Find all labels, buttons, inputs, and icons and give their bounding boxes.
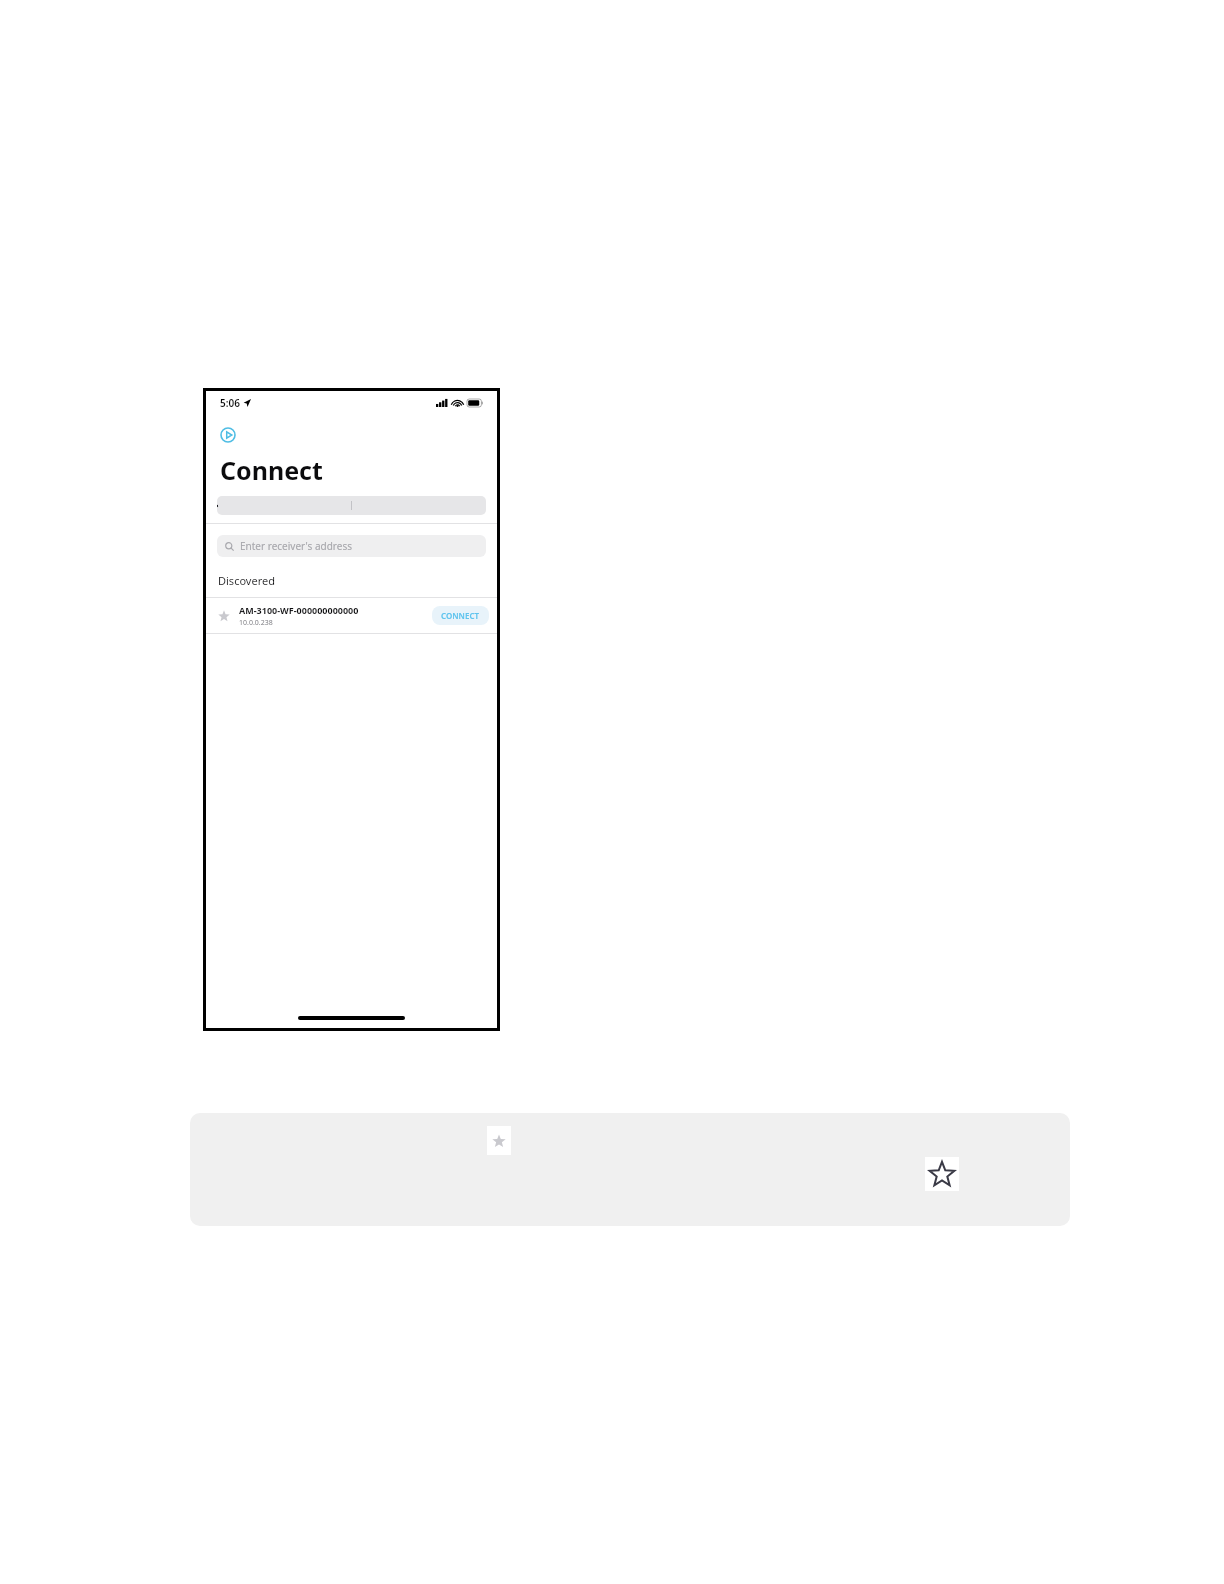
staticText: Connect: [220, 453, 323, 487]
staticText: 5:06: [220, 396, 240, 410]
staticText: Discovered: [218, 573, 275, 588]
other: App logo: [220, 427, 236, 443]
other: Favorite: [217, 609, 231, 623]
button[interactable]: Enter receiver's address: [217, 535, 486, 557]
staticText: CONNECT: [441, 610, 480, 621]
button[interactable]: CONNECT: [432, 606, 489, 625]
staticText: 10.0.0.238: [239, 618, 273, 628]
button[interactable]: Favorite: [206, 598, 497, 633]
staticText: AM-3100-WF-000000000000: [239, 604, 359, 616]
staticText: Enter receiver's address: [240, 539, 352, 553]
